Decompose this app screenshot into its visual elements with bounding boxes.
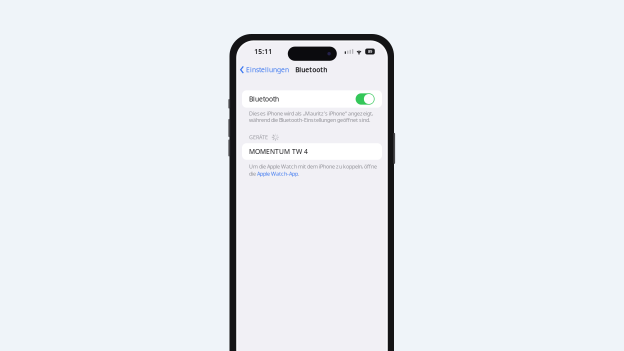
button[interactable]: MOMENTUM TW 4 [242,143,382,160]
staticText: Dieses iPhone wird als „Mauritz's iPhone… [249,110,373,124]
staticText: Um die Apple Watch mit dem iPhone zu kop… [249,163,377,170]
button[interactable]: Einstellungen [238,63,289,77]
button[interactable]: Apple Watch-App [257,170,298,177]
staticText: 15:11 [254,47,272,56]
staticText: Bluetooth [249,95,279,103]
staticText: Apple Watch-App [257,170,298,177]
staticText: MOMENTUM TW 4 [249,147,308,156]
staticText: GERÄTE [249,134,268,141]
button[interactable]: Bluetooth [242,90,382,108]
staticText: 89 [368,49,372,54]
staticText: Bluetooth [295,65,327,74]
staticText: Einstellungen [246,65,289,74]
staticText: . [298,170,299,177]
staticText: die [249,170,257,177]
